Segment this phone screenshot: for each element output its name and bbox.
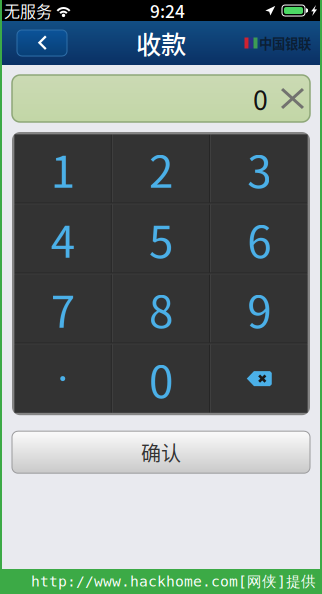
staticText: 6	[247, 207, 271, 270]
staticText: 2	[149, 137, 173, 200]
button[interactable]: 8	[113, 275, 209, 343]
staticText: 确认	[141, 438, 181, 467]
button[interactable]: .	[15, 345, 111, 413]
staticText: 5	[149, 207, 173, 270]
staticText: 收款	[136, 25, 186, 61]
button[interactable]: 6	[211, 205, 307, 273]
button[interactable]: 9	[211, 275, 307, 343]
button[interactable]: Back	[17, 30, 67, 56]
staticText: 4	[51, 207, 75, 270]
button[interactable]: Clear	[281, 88, 304, 109]
staticText: 无服务	[4, 0, 52, 22]
staticText: 9:24	[150, 0, 185, 23]
button[interactable]: 4	[15, 205, 111, 273]
staticText: http://www.hackhome.com[网侠]提供	[31, 572, 316, 590]
staticText: 9	[247, 277, 271, 340]
staticText: 0	[253, 79, 268, 118]
staticText: 0	[149, 347, 173, 410]
button[interactable]: 3	[211, 135, 307, 203]
button[interactable]: Delete	[211, 345, 307, 413]
button[interactable]: 2	[113, 135, 209, 203]
staticText: 8	[149, 277, 173, 340]
staticText: 7	[51, 277, 75, 340]
button[interactable]: 0	[113, 345, 209, 413]
button[interactable]: 1	[15, 135, 111, 203]
button[interactable]: 5	[113, 205, 209, 273]
staticText: 中国银联	[259, 33, 311, 53]
button[interactable]: 确认	[12, 431, 310, 473]
staticText: 3	[247, 137, 271, 200]
button[interactable]: 7	[15, 275, 111, 343]
staticText: 1	[51, 137, 75, 200]
